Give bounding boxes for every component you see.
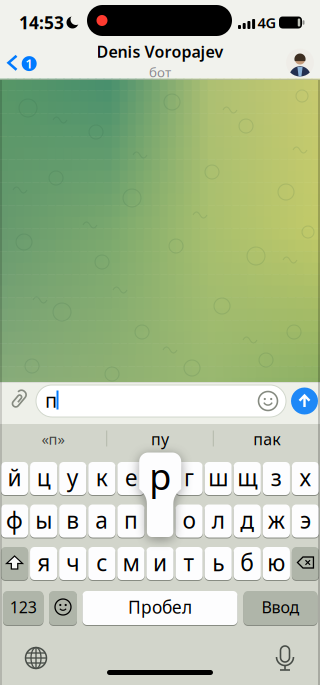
button[interactable]: Next keyboard bbox=[23, 645, 49, 671]
button[interactable]: Profile photo bbox=[286, 48, 314, 76]
button[interactable]: щ bbox=[0, 0, 320, 685]
staticText: пу bbox=[151, 428, 169, 450]
button[interactable]: н bbox=[0, 0, 320, 685]
staticText: к bbox=[96, 462, 108, 492]
button[interactable]: ч bbox=[0, 0, 320, 685]
button[interactable]: г bbox=[0, 0, 320, 685]
button[interactable]: к bbox=[0, 0, 320, 685]
button[interactable]: у bbox=[0, 0, 320, 685]
button[interactable]: Numbers bbox=[0, 0, 320, 685]
staticText: Denis Voropajev bbox=[96, 41, 223, 62]
button[interactable]: и bbox=[0, 0, 320, 685]
button[interactable]: ф bbox=[0, 0, 320, 685]
button[interactable]: ы bbox=[0, 0, 320, 685]
button[interactable]: Пробел bbox=[0, 0, 320, 685]
staticText: ю bbox=[267, 547, 285, 577]
staticText: й bbox=[7, 462, 21, 492]
button[interactable]: Attach bbox=[3, 384, 33, 414]
button[interactable]: Ввод bbox=[0, 0, 320, 685]
button[interactable]: х bbox=[0, 0, 320, 685]
button[interactable]: Dictation bbox=[275, 645, 295, 671]
staticText: ж bbox=[268, 505, 285, 535]
staticText: в bbox=[66, 505, 79, 535]
staticText: щ bbox=[237, 462, 257, 492]
button[interactable]: Emoji bbox=[0, 0, 320, 685]
button[interactable]: м bbox=[0, 0, 320, 685]
button[interactable]: а bbox=[0, 0, 320, 685]
staticText: Ввод bbox=[261, 596, 299, 618]
staticText: н bbox=[153, 462, 167, 492]
staticText: ч bbox=[66, 547, 79, 577]
button[interactable]: д bbox=[0, 0, 320, 685]
staticText: 1 bbox=[25, 54, 33, 72]
button[interactable]: Denis Voropajev bbox=[96, 41, 223, 81]
staticText: 14:53 bbox=[19, 11, 64, 34]
button[interactable]: Send bbox=[291, 387, 318, 414]
staticText: о bbox=[183, 505, 196, 535]
staticText: Пробел bbox=[128, 595, 192, 618]
button[interactable]: ж bbox=[0, 0, 320, 685]
button[interactable]: л bbox=[0, 0, 320, 685]
staticText: ш bbox=[208, 462, 228, 492]
staticText: а bbox=[95, 505, 108, 535]
staticText: я bbox=[37, 547, 50, 577]
button[interactable]: ц bbox=[0, 0, 320, 685]
staticText: с bbox=[96, 547, 107, 577]
button[interactable]: з bbox=[0, 0, 320, 685]
staticText: р bbox=[149, 452, 171, 500]
button[interactable]: й bbox=[0, 0, 320, 685]
staticText: т bbox=[184, 547, 195, 577]
button[interactable]: э bbox=[0, 0, 320, 685]
staticText: п bbox=[124, 505, 138, 535]
staticText: ы bbox=[35, 505, 52, 535]
button[interactable]: о bbox=[0, 0, 320, 685]
staticText: 123 bbox=[10, 596, 37, 618]
staticText: м bbox=[122, 547, 139, 577]
button[interactable]: п bbox=[0, 0, 320, 685]
staticText: г bbox=[184, 462, 194, 492]
staticText: ц bbox=[37, 462, 51, 492]
staticText: ф bbox=[6, 505, 23, 535]
staticText: з bbox=[271, 462, 282, 492]
staticText: у bbox=[67, 462, 79, 492]
staticText: «п» bbox=[41, 429, 64, 449]
staticText: е bbox=[125, 462, 137, 492]
button[interactable]: пак bbox=[253, 428, 280, 450]
button[interactable]: е bbox=[0, 0, 320, 685]
button[interactable]: б bbox=[0, 0, 320, 685]
staticText: ь bbox=[212, 547, 224, 577]
button[interactable]: Shift bbox=[0, 0, 320, 685]
staticText: и bbox=[153, 547, 167, 577]
staticText: л bbox=[212, 505, 225, 535]
staticText: бот bbox=[149, 63, 171, 81]
button[interactable]: ю bbox=[0, 0, 320, 685]
button[interactable]: «п» bbox=[41, 429, 64, 449]
staticText: б bbox=[240, 547, 254, 577]
staticText: 4G bbox=[257, 13, 276, 32]
staticText: э bbox=[300, 505, 311, 535]
staticText: п bbox=[45, 387, 57, 413]
button[interactable]: с bbox=[0, 0, 320, 685]
button[interactable]: Delete bbox=[0, 0, 320, 685]
button[interactable]: т bbox=[0, 0, 320, 685]
button[interactable]: ь bbox=[0, 0, 320, 685]
staticText: х bbox=[299, 462, 311, 492]
button[interactable]: Stickers bbox=[257, 390, 279, 412]
button[interactable]: Back bbox=[2, 48, 46, 78]
button[interactable]: в bbox=[0, 0, 320, 685]
button[interactable]: пу bbox=[151, 428, 169, 450]
staticText: д bbox=[240, 505, 254, 535]
button[interactable]: ш bbox=[0, 0, 320, 685]
staticText: пак bbox=[253, 428, 280, 450]
button[interactable]: я bbox=[0, 0, 320, 685]
